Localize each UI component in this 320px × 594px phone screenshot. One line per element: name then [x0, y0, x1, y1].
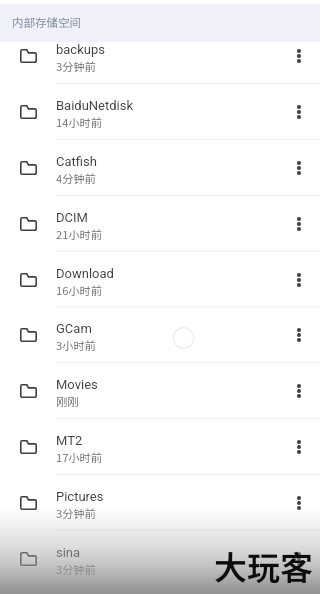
staticText: Pictures [56, 489, 104, 504]
button[interactable]: More options [280, 28, 320, 84]
button[interactable]: More options [280, 419, 320, 475]
staticText: Catfish [56, 154, 97, 169]
button[interactable]: MT2 [0, 419, 320, 475]
button[interactable]: More options [280, 307, 320, 363]
staticText: 21小时前 [56, 226, 102, 242]
staticText: 内部存储空间 [12, 14, 81, 31]
staticText: DCIM [56, 210, 88, 225]
button[interactable]: Movies [0, 363, 320, 419]
staticText: GCam [56, 321, 92, 336]
button[interactable]: sina [0, 531, 320, 587]
button[interactable]: More options [280, 363, 320, 419]
button[interactable]: BaiduNetdisk [0, 84, 320, 140]
button[interactable]: Download [0, 252, 320, 308]
staticText: 3分钟前 [56, 505, 96, 521]
staticText: 3分钟前 [56, 561, 96, 577]
staticText: BaiduNetdisk [56, 98, 134, 113]
staticText: 17小时前 [56, 449, 102, 465]
staticText: Download [56, 266, 114, 281]
staticText: 4分钟前 [56, 170, 96, 186]
button[interactable]: GCam [0, 307, 320, 363]
button[interactable]: DCIM [0, 196, 320, 252]
button[interactable]: More options [280, 531, 320, 587]
staticText: 16小时前 [56, 282, 102, 298]
staticText: 3分钟前 [56, 58, 96, 74]
staticText: Movies [56, 377, 98, 392]
staticText: backups [56, 42, 105, 57]
button[interactable]: Catfish [0, 140, 320, 196]
staticText: 14小时前 [56, 114, 102, 130]
button[interactable]: More options [280, 475, 320, 531]
staticText: 3小时前 [56, 337, 96, 353]
button[interactable]: More options [280, 196, 320, 252]
staticText: MT2 [56, 433, 83, 448]
staticText: sina [56, 545, 81, 560]
button[interactable]: More options [280, 252, 320, 308]
button[interactable]: backups [0, 28, 320, 84]
staticText: 大玩客 [214, 542, 313, 590]
button[interactable]: Pictures [0, 475, 320, 531]
staticText: 刚刚 [56, 393, 79, 409]
button[interactable]: More options [280, 84, 320, 140]
button[interactable]: More options [280, 140, 320, 196]
